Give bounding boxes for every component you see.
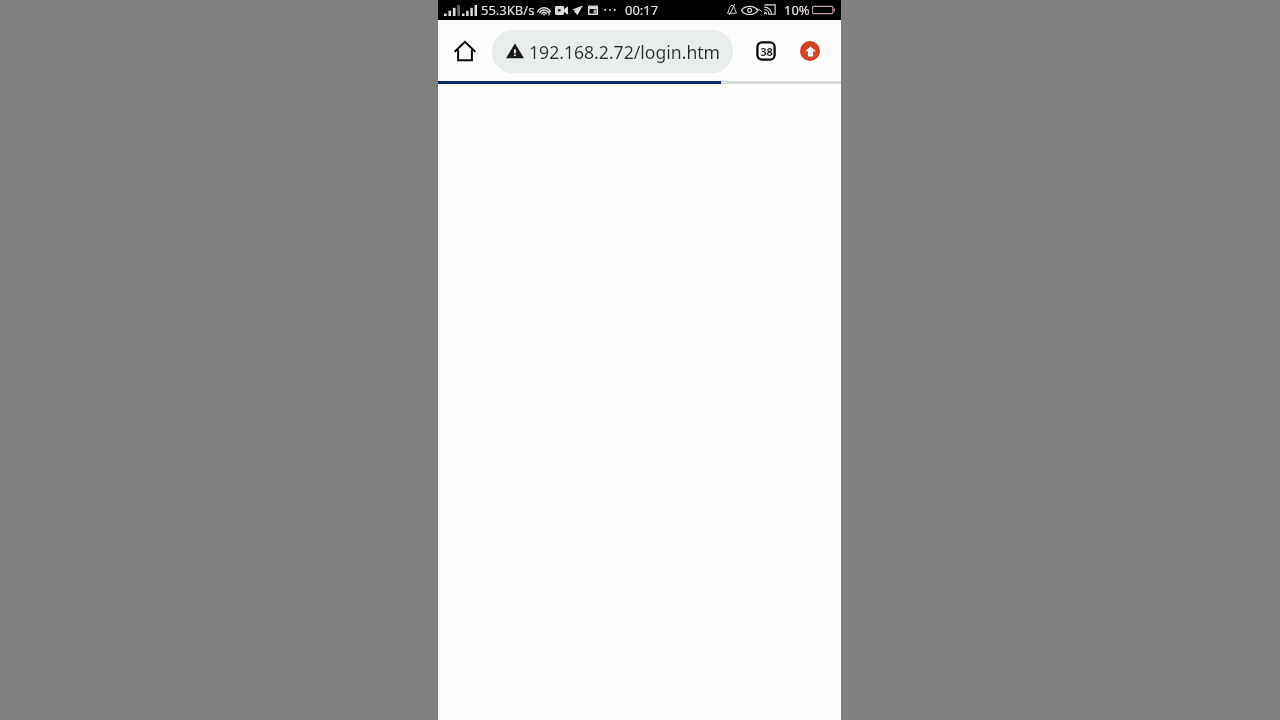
button[interactable]: Home: [451, 20, 479, 81]
staticText: 00:17: [625, 1, 659, 19]
button[interactable]: Tabs: [752, 20, 780, 81]
staticText: 10%: [784, 1, 810, 19]
staticText: 192.168.2.72/login.htm: [529, 40, 721, 64]
button[interactable]: 192.168.2.72/login.htm: [492, 30, 733, 73]
staticText: 55.3KB/s: [481, 1, 535, 19]
staticText: 38: [760, 44, 773, 59]
button[interactable]: Scroll to top: [796, 20, 824, 81]
